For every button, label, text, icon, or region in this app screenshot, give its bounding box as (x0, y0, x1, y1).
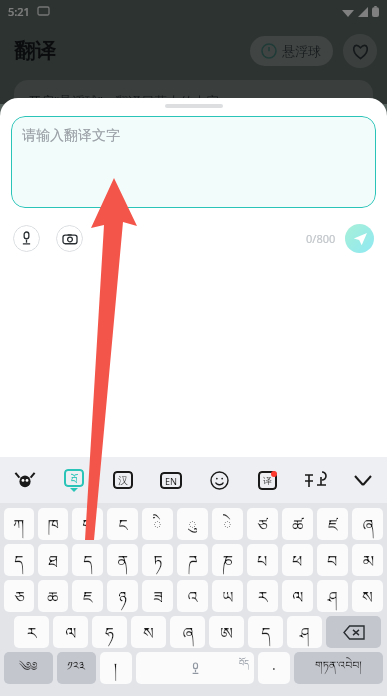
staticText: · (272, 659, 276, 678)
staticText: ག (82, 508, 94, 540)
button[interactable]: ས (352, 580, 383, 612)
staticText: ཧ (105, 616, 114, 648)
staticText: EN (165, 475, 177, 487)
staticText: ཁ (47, 508, 59, 540)
staticText: ཞ (362, 508, 374, 540)
button[interactable]: ཐ (38, 544, 68, 576)
button[interactable]: ཞ (170, 616, 205, 648)
button[interactable]: ། (100, 652, 132, 684)
button[interactable]: ཀ (4, 508, 34, 540)
button[interactable]: ེ (212, 508, 243, 540)
staticText: བ (327, 544, 338, 576)
staticText: ཤ (327, 580, 338, 612)
button[interactable]: ཛ (317, 508, 348, 540)
staticText: 翻译 (14, 38, 56, 64)
button[interactable]: ཇ (72, 580, 103, 612)
staticText: ཕ (292, 544, 303, 576)
button[interactable]: bull (0, 457, 49, 503)
button[interactable]: ང (107, 508, 138, 540)
button[interactable]: han (98, 457, 147, 503)
button[interactable]: ཧ (92, 616, 127, 648)
button[interactable]: ༡༢༣ (57, 652, 96, 684)
button[interactable]: down (339, 457, 387, 503)
staticText: མ (362, 544, 374, 576)
staticText: ཎ (222, 544, 233, 576)
staticText: ི (153, 508, 162, 540)
staticText: ༡༢༣ (67, 652, 86, 684)
staticText: ཚ (292, 508, 304, 540)
staticText: 开启“悬浮球”，翻译屏幕上的内容。 (28, 92, 233, 110)
button[interactable]: ག (72, 508, 103, 540)
button[interactable]: 请输入翻译文字 (11, 116, 376, 208)
staticText: ། (114, 652, 118, 684)
staticText: ཨ (220, 616, 233, 648)
button[interactable]: ཎ (212, 544, 243, 576)
button[interactable]: ཤ (287, 616, 322, 648)
button[interactable]: ཚ (282, 508, 313, 540)
staticText: ཆ (47, 580, 59, 612)
staticText: ད (261, 616, 271, 648)
staticText: 请输入翻译文字 (22, 127, 120, 145)
button[interactable]: ར (247, 580, 278, 612)
staticText: ུ (188, 508, 197, 540)
button[interactable]: ཙ (247, 508, 278, 540)
button[interactable]: Favorite (343, 34, 377, 68)
button[interactable]: ཏ (142, 544, 173, 576)
button[interactable]: Voice input (13, 225, 40, 252)
button[interactable]: ཤ (317, 580, 348, 612)
staticText: གཏན་འབེབ། (315, 653, 362, 684)
button[interactable]: ཕ (282, 544, 313, 576)
button[interactable]: ད (4, 544, 34, 576)
button[interactable]: ༄༅ (4, 652, 53, 684)
button[interactable]: ཨ (209, 616, 244, 648)
button[interactable]: པ (247, 544, 278, 576)
button[interactable]: Backspace (326, 616, 381, 648)
button[interactable]: འ (177, 580, 208, 612)
staticText: ཇ (83, 580, 93, 612)
button[interactable]: emoji (195, 457, 243, 503)
button[interactable]: · (258, 652, 290, 684)
staticText: ད (14, 544, 24, 576)
staticText: 5:21 (8, 4, 30, 19)
button[interactable]: ད (248, 616, 283, 648)
button[interactable]: trans (243, 457, 291, 503)
button[interactable]: ལ (282, 580, 313, 612)
button[interactable]: ད (72, 544, 103, 576)
staticText: ར (27, 616, 37, 648)
button[interactable]: ཅ (4, 580, 34, 612)
button[interactable]: གཏན་འབེབ། (294, 652, 383, 684)
button[interactable]: Space (136, 652, 254, 684)
button[interactable]: ུ (177, 508, 208, 540)
button[interactable]: ཁ (38, 508, 68, 540)
button[interactable]: tib (49, 457, 98, 503)
button[interactable]: ཆ (38, 580, 68, 612)
button[interactable]: ན (107, 544, 138, 576)
staticText: འ (187, 580, 198, 612)
staticText: ༄༅ (19, 652, 38, 684)
button[interactable]: ཌ (177, 544, 208, 576)
staticText: ེ (223, 508, 232, 540)
button[interactable]: མ (352, 544, 383, 576)
button[interactable]: ཉ (107, 580, 138, 612)
button[interactable]: Send (345, 224, 374, 253)
button[interactable]: en (147, 457, 195, 503)
staticText: ཅ (14, 580, 25, 612)
button[interactable]: ས (131, 616, 166, 648)
button[interactable]: ལ (53, 616, 88, 648)
staticText: 0/800 (306, 231, 336, 246)
staticText: 悬浮球 (282, 43, 321, 59)
button[interactable]: ཡ (212, 580, 243, 612)
staticText: 译 (263, 475, 272, 486)
button[interactable]: ར (14, 616, 49, 648)
staticText: ཞ (182, 616, 194, 648)
staticText: པ (257, 544, 268, 576)
staticText: ཌ (188, 544, 198, 576)
button[interactable]: ི (142, 508, 173, 540)
button[interactable]: 悬浮球 (250, 36, 333, 66)
staticText: ར (258, 580, 268, 612)
button[interactable]: Camera (56, 225, 83, 252)
button[interactable]: བ (317, 544, 348, 576)
button[interactable]: ཞ (352, 508, 383, 540)
button[interactable]: hanTib (291, 457, 339, 503)
button[interactable]: ཟ (142, 580, 173, 612)
